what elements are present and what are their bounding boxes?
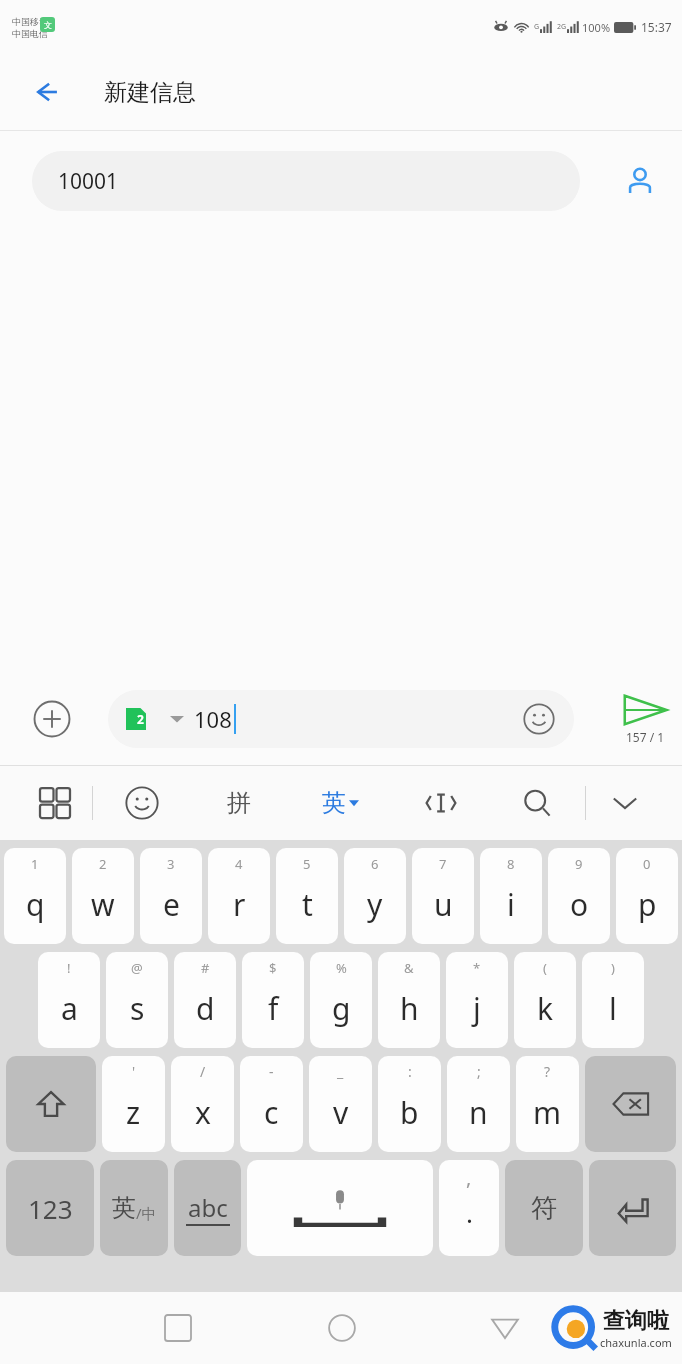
button[interactable]: 8 (480, 848, 542, 944)
button[interactable]: @ (106, 952, 168, 1048)
button[interactable]: Send (622, 693, 668, 745)
button[interactable]: 1 (4, 848, 66, 944)
button[interactable]: Search (489, 773, 585, 833)
staticText: abc (188, 1191, 228, 1224)
staticText: b (400, 1092, 419, 1133)
staticText: x (195, 1092, 211, 1133)
button[interactable]: Emoji (93, 773, 190, 833)
button[interactable]: ' (102, 1056, 165, 1152)
staticText: , (466, 1164, 472, 1191)
staticText: f (268, 988, 279, 1029)
button[interactable]: Back (24, 70, 68, 114)
button[interactable]: : (378, 1056, 441, 1152)
button[interactable]: ( (514, 952, 576, 1048)
staticText: ' (132, 1062, 136, 1081)
staticText: o (570, 884, 589, 925)
button[interactable]: 3 (140, 848, 202, 944)
button[interactable]: 2 (72, 848, 134, 944)
button[interactable]: ) (582, 952, 644, 1048)
button[interactable]: 2 (108, 690, 574, 748)
button[interactable]: Add attachment (26, 693, 78, 745)
button[interactable]: Choose contact (616, 157, 664, 205)
button[interactable]: 拼 (190, 773, 287, 833)
button[interactable]: 9 (548, 848, 610, 944)
staticText: 3 (167, 855, 175, 873)
staticText: s (130, 988, 145, 1029)
button[interactable]: Space (247, 1160, 433, 1256)
button[interactable]: 英 (287, 773, 393, 833)
button[interactable]: , (439, 1160, 499, 1256)
button[interactable]: 6 (344, 848, 406, 944)
button[interactable]: 5 (276, 848, 338, 944)
button[interactable]: ! (38, 952, 100, 1048)
button[interactable]: Back (423, 1292, 586, 1364)
staticText: /中 (136, 1203, 157, 1223)
staticText: % (336, 959, 347, 977)
staticText: d (196, 988, 215, 1029)
staticText: 9 (575, 855, 583, 873)
staticText: u (434, 884, 453, 925)
button[interactable]: 符 (505, 1160, 583, 1256)
button[interactable]: 4 (208, 848, 270, 944)
staticText: r (233, 884, 246, 925)
staticText: 8 (507, 855, 515, 873)
button[interactable]: Home (260, 1292, 423, 1364)
button[interactable]: 10001 (32, 151, 580, 211)
button[interactable]: Keyboard layouts (18, 773, 92, 833)
staticText: . (466, 1195, 473, 1230)
button[interactable]: 英 (100, 1160, 168, 1256)
button[interactable]: Shift (6, 1056, 96, 1152)
button[interactable]: Hide keyboard (586, 773, 664, 833)
staticText: i (507, 884, 515, 925)
staticText: 7 (439, 855, 447, 873)
staticText: - (269, 1062, 274, 1081)
button[interactable]: Emoji (518, 698, 560, 740)
staticText: * (473, 959, 481, 977)
button[interactable]: ; (447, 1056, 510, 1152)
staticText: ; (477, 1062, 481, 1081)
button[interactable]: $ (242, 952, 304, 1048)
button[interactable]: 7 (412, 848, 474, 944)
button[interactable]: _ (309, 1056, 372, 1152)
staticText: : (408, 1062, 412, 1081)
button[interactable]: / (171, 1056, 234, 1152)
staticText: n (469, 1092, 488, 1133)
staticText: v (333, 1092, 349, 1133)
staticText: 拼 (227, 788, 251, 818)
staticText: 2 (99, 855, 107, 873)
staticText: 0 (643, 855, 651, 873)
staticText: 15:37 (641, 19, 672, 35)
staticText: 2 (137, 711, 144, 727)
staticText: ! (67, 959, 71, 977)
button[interactable]: * (446, 952, 508, 1048)
button[interactable]: & (378, 952, 440, 1048)
staticText: 10001 (58, 167, 119, 196)
staticText: e (163, 884, 180, 925)
staticText: 2G (557, 22, 567, 32)
button[interactable]: Backspace (585, 1056, 676, 1152)
staticText: 中国电信 (12, 28, 48, 39)
staticText: 查询啦 (603, 1307, 669, 1335)
button[interactable]: 0 (616, 848, 678, 944)
staticText: 4 (235, 855, 243, 873)
staticText: chaxunla.com (600, 1335, 672, 1350)
staticText: l (609, 988, 617, 1029)
button[interactable]: Move cursor (393, 773, 489, 833)
staticText: 100% (582, 20, 611, 35)
staticText: y (367, 884, 383, 925)
button[interactable]: # (174, 952, 236, 1048)
staticText: a (61, 988, 78, 1029)
button[interactable]: Recents (96, 1292, 260, 1364)
button[interactable]: abc (174, 1160, 241, 1256)
button[interactable]: Enter (589, 1160, 676, 1256)
staticText: 1 (31, 855, 39, 873)
staticText: g (332, 988, 351, 1029)
staticText: ( (543, 959, 547, 977)
button[interactable]: - (240, 1056, 303, 1152)
button[interactable]: ? (516, 1056, 579, 1152)
staticText: t (302, 884, 313, 925)
staticText: k (537, 988, 554, 1029)
button[interactable]: 123 (6, 1160, 94, 1256)
staticText: ) (611, 959, 615, 977)
button[interactable]: % (310, 952, 372, 1048)
